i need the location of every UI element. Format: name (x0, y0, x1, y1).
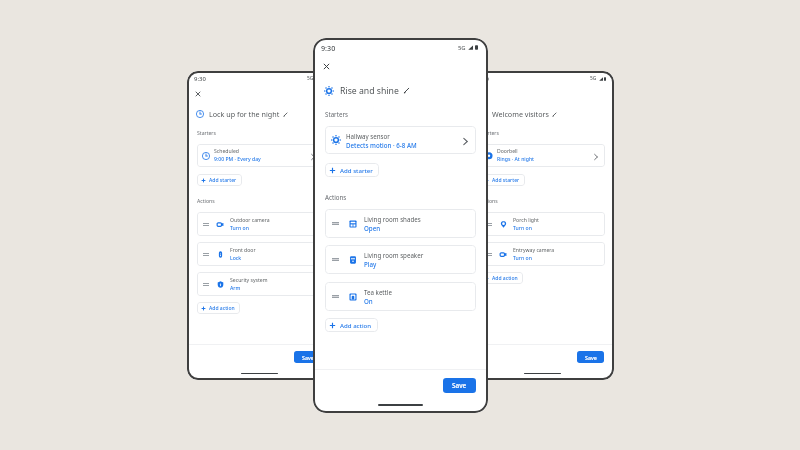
staticText: Rise and shine (340, 85, 399, 97)
staticText: 9:30 (477, 75, 489, 83)
staticText: Actions (197, 198, 215, 205)
button[interactable]: Save (294, 351, 321, 363)
staticText: Play (364, 260, 377, 268)
staticText: 9:30 (194, 75, 206, 83)
staticText: Living room speaker (364, 251, 424, 259)
staticText: Open (364, 224, 381, 232)
staticText: Turn on (513, 225, 532, 232)
staticText: Outdoor camera (230, 217, 270, 224)
button[interactable]: Hallway sensor (325, 126, 476, 154)
button[interactable]: Rise and shine (324, 82, 412, 99)
staticText: Starters (480, 130, 499, 137)
staticText: Add action (492, 275, 518, 282)
button[interactable]: Scheduled (197, 144, 322, 167)
staticText: Add starter (492, 177, 520, 184)
button[interactable]: Porch light (480, 212, 605, 236)
button[interactable]: Add action (197, 302, 240, 314)
button[interactable]: Front door (197, 242, 322, 266)
staticText: Welcome visitors (492, 109, 549, 119)
button[interactable]: Add starter (197, 174, 242, 186)
button[interactable]: Living room shades (325, 209, 476, 238)
staticText: Actions (325, 193, 347, 201)
button[interactable]: Security system (197, 272, 322, 296)
button[interactable]: Add starter (480, 174, 525, 186)
button[interactable]: Rename routine (281, 110, 290, 119)
staticText: Detects motion · 6-8 AM (346, 141, 417, 149)
staticText: Starters (325, 110, 348, 118)
staticText: Actions (480, 198, 498, 205)
button[interactable]: Tea kettle (325, 282, 476, 311)
staticText: Add action (209, 305, 235, 312)
staticText: Save (302, 354, 314, 361)
staticText: Add starter (340, 166, 373, 174)
staticText: Security system (230, 277, 268, 284)
button[interactable]: Rename routine (401, 85, 412, 96)
button[interactable]: Doorbell (480, 144, 605, 167)
staticText: 5G (590, 75, 597, 82)
button[interactable]: Welcome visitors (479, 107, 559, 121)
staticText: On (364, 297, 373, 305)
button[interactable]: Add starter (325, 163, 379, 177)
staticText: 5G (307, 75, 314, 82)
staticText: Lock (230, 255, 242, 262)
staticText: Add action (340, 321, 372, 329)
button[interactable]: Close (188, 84, 208, 104)
button[interactable]: Add action (480, 272, 523, 284)
staticText: Entryway camera (513, 247, 555, 254)
button[interactable]: Save (577, 351, 604, 363)
button[interactable]: Living room speaker (325, 245, 476, 274)
staticText: Porch light (513, 217, 539, 224)
button[interactable]: Add action (325, 318, 378, 332)
button[interactable]: Outdoor camera (197, 212, 322, 236)
staticText: Doorbell (497, 148, 518, 155)
button[interactable]: Lock up for the night (196, 107, 290, 121)
staticText: Rings · At night (497, 156, 535, 163)
staticText: Tea kettle (364, 288, 392, 296)
button[interactable]: Rename routine (550, 110, 559, 119)
staticText: Add starter (209, 177, 237, 184)
staticText: Hallway sensor (346, 132, 390, 140)
staticText: Save (585, 354, 597, 361)
button[interactable]: Entryway camera (480, 242, 605, 266)
staticText: Front door (230, 247, 256, 254)
staticText: Turn on (230, 225, 249, 232)
staticText: Scheduled (214, 148, 239, 155)
staticText: 5G (458, 44, 466, 52)
staticText: Turn on (513, 255, 532, 262)
staticText: Arm (230, 285, 241, 292)
staticText: Living room shades (364, 215, 421, 223)
staticText: 9:30 (321, 43, 336, 53)
staticText: Lock up for the night (209, 109, 280, 119)
button[interactable]: Close (471, 84, 491, 104)
staticText: 9:00 PM · Every day (214, 156, 261, 163)
staticText: Starters (197, 130, 216, 137)
staticText: Save (452, 381, 467, 390)
button[interactable]: Save (443, 378, 476, 393)
button[interactable]: Close (314, 54, 338, 78)
